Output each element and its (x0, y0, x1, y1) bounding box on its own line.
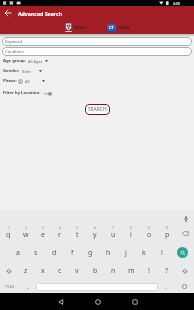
button[interactable] (174, 280, 194, 293)
button[interactable]: x (34, 262, 51, 280)
button[interactable]: 4 (51, 224, 68, 243)
button[interactable]: 1 (0, 224, 17, 243)
button[interactable]: 9 (140, 224, 158, 243)
staticText: x (41, 266, 45, 276)
staticText: p (165, 230, 170, 240)
staticText: All Ages (28, 59, 43, 64)
button[interactable]: Keyword (2, 37, 192, 46)
staticText: r (58, 230, 61, 240)
staticText: z (24, 266, 28, 276)
staticText: Phase: (3, 78, 17, 84)
staticText: 7 (112, 226, 114, 230)
button[interactable]: s (27, 243, 45, 262)
staticText: Gender: (3, 68, 20, 74)
staticText: d (52, 248, 57, 258)
staticText: u (111, 230, 116, 240)
staticText: CT (109, 25, 114, 30)
staticText: ! (148, 266, 150, 276)
button[interactable]: . (158, 280, 174, 293)
staticText: v (75, 266, 79, 276)
staticText: Filter by Location: (3, 90, 41, 96)
button[interactable]: z (17, 262, 34, 280)
button[interactable]: ?123 (0, 280, 20, 293)
staticText: n (111, 266, 116, 276)
button[interactable] (36, 283, 158, 291)
button[interactable]: n (104, 262, 122, 280)
button[interactable]: Filter by Location: (3, 90, 53, 96)
button[interactable]: TRIALS (54, 20, 97, 34)
staticText: 9 (148, 226, 150, 230)
button[interactable] (0, 262, 17, 280)
staticText: 8 (130, 226, 132, 230)
button[interactable] (4, 9, 12, 17)
staticText: g (88, 248, 93, 258)
staticText: All (25, 79, 30, 84)
staticText: o (147, 230, 152, 240)
staticText: l (161, 248, 163, 258)
staticText: 6 (94, 226, 96, 230)
staticText: 0 (166, 226, 168, 230)
button[interactable]: g (81, 243, 99, 262)
button[interactable]: 3 (34, 224, 51, 243)
button[interactable]: 2 (17, 224, 34, 243)
staticText: TRIALS (118, 25, 130, 30)
button[interactable] (116, 293, 153, 310)
staticText: s (34, 248, 38, 258)
staticText: 1 (8, 226, 10, 230)
button[interactable] (42, 293, 79, 310)
button[interactable]: 0 (158, 224, 176, 243)
button[interactable] (184, 216, 188, 222)
button[interactable]: c (51, 262, 68, 280)
button[interactable]: f (63, 243, 81, 262)
button[interactable]: l (153, 243, 171, 262)
button[interactable]: , (20, 280, 36, 293)
button[interactable]: 5 (68, 224, 86, 243)
button[interactable]: j (117, 243, 135, 262)
staticText: j (125, 248, 127, 258)
staticText: TRIALS (74, 25, 86, 30)
button[interactable]: Both (22, 68, 42, 74)
staticText: Age group: (3, 58, 26, 64)
staticText: h (106, 248, 111, 258)
button[interactable] (79, 293, 116, 310)
staticText: m (128, 266, 135, 276)
staticText: SEARCH (88, 106, 107, 113)
button[interactable]: v (68, 262, 86, 280)
button[interactable]: d (45, 243, 63, 262)
button[interactable] (176, 262, 194, 280)
button[interactable]: All Ages (28, 58, 48, 64)
button[interactable]: Condition (2, 47, 192, 56)
staticText: 2 (25, 226, 27, 230)
staticText: Advanced Search (18, 10, 63, 17)
staticText: ? (165, 266, 169, 276)
button[interactable]: All (25, 78, 45, 84)
button[interactable]: CT (97, 20, 140, 34)
staticText: i (130, 230, 132, 240)
staticText: c (58, 266, 62, 276)
staticText: ?123 (5, 284, 15, 290)
button[interactable]: SEARCH (85, 104, 110, 115)
button[interactable]: 8 (122, 224, 140, 243)
staticText: 4 (59, 226, 61, 230)
button[interactable]: 6 (86, 224, 104, 243)
button[interactable]: b (86, 262, 104, 280)
button[interactable]: m (122, 262, 140, 280)
button[interactable]: a (9, 243, 27, 262)
staticText: b (93, 266, 98, 276)
button[interactable] (176, 224, 194, 243)
button[interactable] (171, 243, 194, 262)
staticText: y (93, 230, 97, 240)
button[interactable]: ? (158, 262, 176, 280)
staticText: w (23, 230, 29, 240)
staticText: Both (22, 69, 31, 74)
button[interactable]: ! (140, 262, 158, 280)
button[interactable]: k (135, 243, 153, 262)
staticText: e (41, 230, 45, 240)
staticText: , (27, 283, 29, 291)
staticText: k (142, 248, 146, 258)
staticText: . (165, 283, 167, 291)
staticText: 5 (76, 226, 78, 230)
button[interactable]: 7 (104, 224, 122, 243)
staticText: Condition (5, 49, 25, 55)
button[interactable]: h (99, 243, 117, 262)
